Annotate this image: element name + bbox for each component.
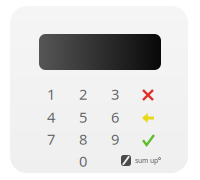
button[interactable]: 0	[70, 150, 96, 172]
staticText: 3	[111, 84, 119, 104]
staticText: 1	[47, 84, 55, 104]
staticText: 5	[79, 107, 87, 127]
staticText: sum up	[135, 156, 158, 165]
button[interactable]: 8	[70, 128, 96, 150]
button[interactable]: 6	[102, 106, 128, 128]
button[interactable]: 5	[70, 106, 96, 128]
staticText: 4	[47, 107, 55, 127]
button[interactable]: 2	[70, 83, 96, 105]
staticText: 2	[79, 84, 87, 104]
button[interactable]: 7	[38, 128, 64, 150]
button[interactable]: Cancel	[137, 84, 159, 106]
button[interactable]: Backspace	[136, 107, 160, 129]
button[interactable]: 1	[38, 83, 64, 105]
button[interactable]: 4	[38, 106, 64, 128]
button[interactable]: 3	[102, 83, 128, 105]
staticText: 8	[79, 129, 87, 149]
staticText: 6	[111, 107, 119, 127]
staticText: 9	[111, 129, 119, 149]
button[interactable]: 9	[102, 128, 128, 150]
button[interactable]: Confirm	[137, 129, 160, 151]
staticText: 0	[79, 151, 87, 171]
staticText: 7	[47, 129, 55, 149]
